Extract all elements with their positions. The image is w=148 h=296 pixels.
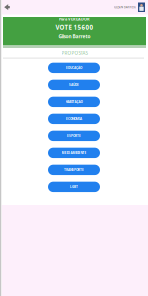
staticText: Gilson Barreto	[58, 33, 90, 39]
staticText: EDUCAÇÃO	[66, 66, 82, 70]
button[interactable]: HABITAÇÃO	[48, 97, 100, 107]
button[interactable]: ESPORTE	[48, 131, 100, 141]
button[interactable]: SAÚDE	[48, 80, 100, 90]
staticText: VOTE 15600	[55, 23, 93, 32]
staticText: HABITAÇÃO	[65, 100, 82, 104]
button[interactable]: EDUCAÇÃO	[48, 63, 100, 73]
button[interactable]: TRANSPORTE	[48, 165, 100, 175]
staticText: ECONOMIA	[66, 117, 82, 121]
staticText: MEIO AMBIENTE	[61, 151, 86, 155]
staticText: LGBT	[70, 185, 78, 189]
staticText: Para VEREADOR	[59, 16, 90, 22]
button[interactable]: Back	[0, 0, 14, 14]
staticText: TRANSPORTE	[64, 168, 84, 172]
staticText: SAÚDE	[69, 83, 79, 87]
staticText: GILSON BARRETO	[114, 5, 136, 9]
staticText: ESPORTE	[67, 134, 81, 138]
button[interactable]: MEIO AMBIENTE	[48, 148, 100, 158]
button[interactable]: ECONOMIA	[48, 114, 100, 124]
button[interactable]: LGBT	[48, 182, 100, 192]
staticText: PROPOSTAS	[61, 50, 87, 56]
